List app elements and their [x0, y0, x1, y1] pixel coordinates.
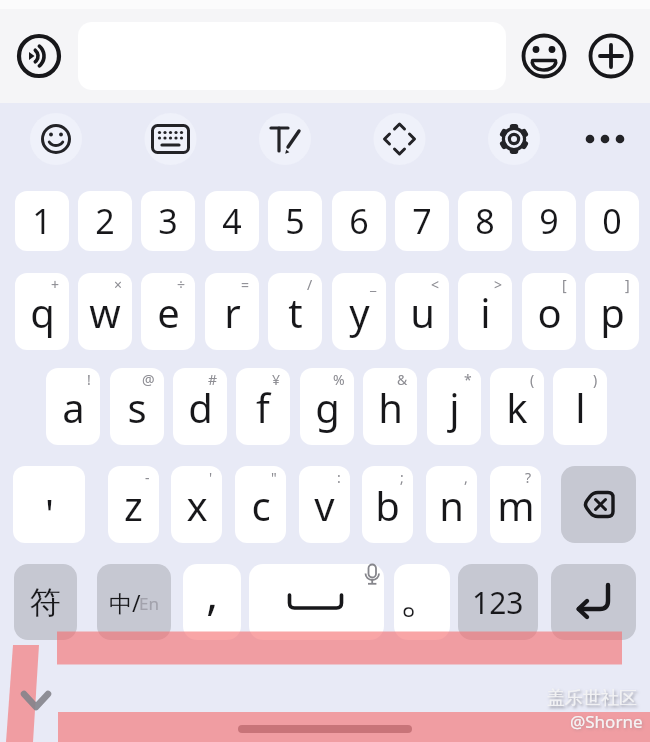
staticText: & [397, 370, 408, 389]
button[interactable]: c [235, 466, 286, 543]
staticText: r [224, 285, 241, 339]
staticText: : [337, 468, 341, 487]
staticText: m [497, 478, 535, 532]
button[interactable]: 8 [458, 191, 512, 251]
button[interactable]: j [427, 368, 481, 445]
button[interactable]: y [332, 273, 386, 350]
button[interactable]: s [110, 368, 164, 445]
button[interactable] [522, 34, 566, 78]
button[interactable]: 7 [395, 191, 449, 251]
button[interactable]: 符 [14, 564, 77, 640]
staticText: - [145, 468, 150, 487]
button[interactable]: h [363, 368, 417, 445]
button[interactable]: 9 [522, 191, 576, 251]
button[interactable]: b [362, 466, 413, 543]
staticText: × [114, 275, 123, 294]
staticText: g [315, 380, 340, 434]
button[interactable]: d [173, 368, 227, 445]
staticText: n [439, 478, 464, 532]
button[interactable]: i [458, 273, 512, 350]
button[interactable]: 中/ [97, 564, 171, 640]
staticText: ÷ [177, 275, 186, 294]
button[interactable]: 2 [78, 191, 132, 251]
button[interactable] [249, 564, 384, 640]
staticText: y [349, 285, 370, 339]
staticText: 符 [30, 583, 61, 622]
staticText: ; [400, 468, 404, 487]
button[interactable]: x [171, 466, 222, 543]
staticText: @ [142, 370, 155, 389]
button[interactable] [145, 113, 197, 165]
button[interactable]: z [108, 466, 159, 543]
staticText: a [62, 380, 85, 434]
button[interactable] [488, 113, 540, 165]
staticText: e [157, 285, 180, 339]
staticText: < [431, 275, 440, 294]
button[interactable]: 。 [394, 564, 450, 640]
button[interactable]: , [183, 564, 241, 640]
button[interactable]: t [268, 273, 322, 350]
button[interactable]: k [490, 368, 544, 445]
button[interactable]: ' [13, 466, 85, 543]
staticText: ) [593, 370, 598, 389]
button[interactable]: o [522, 273, 576, 350]
button[interactable]: 5 [268, 191, 322, 251]
staticText: u [410, 285, 435, 339]
button[interactable]: m [490, 466, 541, 543]
button[interactable] [551, 564, 636, 640]
staticText: * [464, 370, 472, 389]
button[interactable]: 0 [585, 191, 639, 251]
button[interactable] [374, 113, 426, 165]
button[interactable] [561, 466, 636, 543]
button[interactable]: 123 [458, 564, 538, 640]
button[interactable] [259, 113, 311, 165]
staticText: / [307, 275, 313, 294]
staticText: " [271, 468, 277, 487]
button[interactable]: n [426, 466, 477, 543]
staticText: ( [530, 370, 535, 389]
button[interactable]: f [236, 368, 290, 445]
button[interactable]: w [78, 273, 132, 350]
button[interactable]: 6 [332, 191, 386, 251]
button[interactable]: q [15, 273, 69, 350]
staticText: t [288, 285, 303, 339]
staticText: z [124, 478, 143, 532]
staticText: q [30, 285, 55, 339]
button[interactable]: e [141, 273, 195, 350]
button[interactable] [30, 113, 82, 165]
staticText: 4 [222, 198, 242, 244]
staticText: + [51, 275, 60, 294]
staticText: f [256, 380, 270, 434]
staticText: 123 [472, 582, 524, 623]
button[interactable]: 3 [141, 191, 195, 251]
staticText: > [494, 275, 503, 294]
staticText: 9 [539, 198, 559, 244]
staticText: v [314, 478, 335, 532]
button[interactable]: u [395, 273, 449, 350]
staticText: ' [209, 468, 213, 487]
button[interactable]: g [300, 368, 354, 445]
staticText: % [333, 370, 345, 389]
staticText: ] [625, 275, 630, 294]
staticText: 5 [285, 198, 305, 244]
button[interactable] [589, 34, 633, 78]
staticText: ¥ [272, 370, 281, 389]
staticText: d [188, 380, 213, 434]
button[interactable]: 4 [205, 191, 259, 251]
button[interactable]: p [585, 273, 639, 350]
button[interactable]: 1 [15, 191, 69, 251]
staticText: o [537, 285, 562, 339]
staticText: l [575, 380, 586, 434]
staticText: h [378, 380, 403, 434]
button[interactable] [579, 113, 631, 165]
staticText: En [139, 592, 159, 615]
button[interactable]: l [553, 368, 607, 445]
button[interactable]: a [46, 368, 100, 445]
staticText: 3 [158, 198, 178, 244]
button[interactable]: v [299, 466, 350, 543]
button[interactable] [17, 34, 61, 78]
button[interactable]: r [205, 273, 259, 350]
staticText: s [127, 380, 147, 434]
staticText: c [251, 478, 271, 532]
